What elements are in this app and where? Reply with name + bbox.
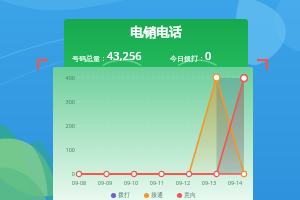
staticText: 300 bbox=[55, 98, 75, 105]
button[interactable]: 接通 bbox=[144, 191, 163, 199]
staticText: 接通 bbox=[151, 191, 163, 199]
staticText: 09-09 bbox=[92, 179, 118, 186]
button[interactable]: Call statistics chart bbox=[53, 67, 253, 200]
button[interactable]: 意向 bbox=[177, 191, 196, 199]
staticText: 09-12 bbox=[170, 179, 196, 186]
staticText: 400 bbox=[55, 74, 75, 81]
staticText: 0 bbox=[55, 170, 75, 177]
staticText: 09-08 bbox=[66, 179, 92, 186]
staticText: 09-10 bbox=[118, 179, 144, 186]
staticText: 43,256 bbox=[107, 48, 142, 63]
staticText: 200 bbox=[55, 122, 75, 129]
staticText: 0 bbox=[205, 48, 212, 63]
staticText: 意向 bbox=[184, 191, 196, 199]
staticText: 09-13 bbox=[196, 179, 222, 186]
staticText: 今日拨打： bbox=[170, 54, 205, 63]
button[interactable]: 拨打 bbox=[111, 191, 130, 199]
staticText: 100 bbox=[55, 146, 75, 153]
staticText: 号码总量： bbox=[72, 54, 107, 63]
staticText: 09-11 bbox=[144, 179, 170, 186]
staticText: 09-14 bbox=[222, 179, 248, 186]
staticText: 电销电话 bbox=[64, 24, 248, 40]
staticText: 拨打 bbox=[118, 191, 130, 199]
button[interactable]: 电销电话 bbox=[64, 19, 248, 67]
